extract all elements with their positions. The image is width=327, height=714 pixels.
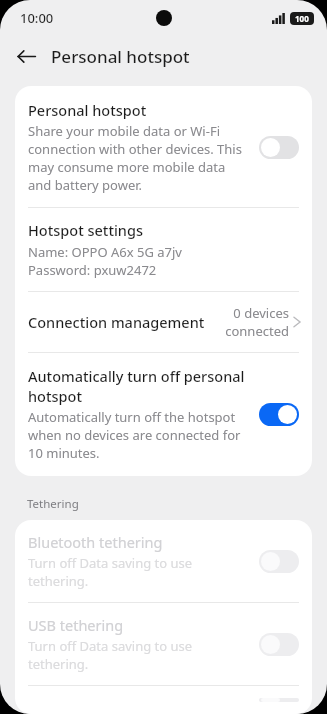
button[interactable]: Toggle bbox=[259, 136, 299, 159]
staticText: Turn off Data saving to use tethering. bbox=[28, 554, 249, 590]
button[interactable]: Toggle bbox=[259, 698, 299, 702]
button[interactable]: Hotspot settings bbox=[15, 208, 312, 291]
staticText: 0 devices connected bbox=[217, 304, 289, 340]
button[interactable]: Back bbox=[8, 38, 44, 74]
staticText: 100 bbox=[295, 13, 309, 24]
button[interactable]: Automatically turn off personal hotspot bbox=[15, 353, 312, 476]
staticText: Connection management bbox=[28, 312, 209, 332]
staticText: Automatically turn off the hotspot when … bbox=[28, 408, 249, 462]
staticText: Hotspot settings bbox=[28, 220, 143, 240]
staticText: Automatically turn off personal hotspot bbox=[28, 366, 249, 406]
button[interactable]: Bluetooth tethering bbox=[15, 520, 312, 602]
button[interactable]: Toggle bbox=[259, 403, 299, 426]
button[interactable]: Ethernet tethering bbox=[15, 686, 312, 714]
staticText: USB tethering bbox=[28, 615, 124, 635]
button[interactable]: Toggle bbox=[259, 633, 299, 656]
staticText: Tethering bbox=[27, 496, 79, 512]
staticText: 10:00 bbox=[20, 9, 54, 27]
staticText: Bluetooth tethering bbox=[28, 532, 163, 552]
button[interactable]: USB tethering bbox=[15, 603, 312, 685]
button[interactable]: Personal hotspot bbox=[15, 86, 312, 207]
staticText: Name: OPPO A6x 5G a7jv bbox=[28, 243, 182, 261]
button[interactable]: Toggle bbox=[259, 550, 299, 573]
staticText: Turn off Data saving to use tethering. bbox=[28, 637, 249, 673]
staticText: Personal hotspot bbox=[51, 45, 190, 68]
staticText: Personal hotspot bbox=[28, 100, 147, 120]
button[interactable]: Connection management bbox=[15, 292, 312, 352]
staticText: Share your mobile data or Wi-Fi connecti… bbox=[28, 122, 249, 194]
staticText: Password: pxuw2472 bbox=[28, 261, 157, 279]
